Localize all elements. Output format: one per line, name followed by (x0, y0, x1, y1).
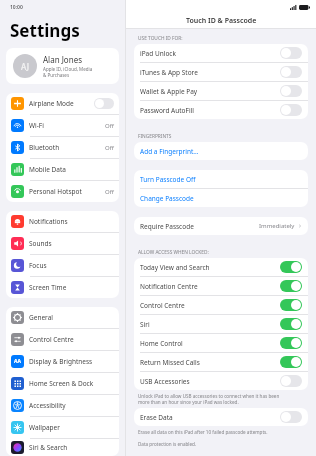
staticText: Wi-Fi (29, 121, 105, 130)
staticText: FINGERPRINTS (138, 133, 172, 140)
button[interactable]: Wallpaper (6, 417, 119, 438)
staticText: Immediately (259, 222, 295, 230)
staticText: USE TOUCH ID FOR: (138, 35, 183, 42)
button[interactable]: Turn Passcode Off (134, 170, 308, 188)
staticText: iTunes & App Store (140, 68, 280, 77)
button[interactable]: Off (280, 375, 302, 387)
button[interactable]: Notifications (6, 211, 119, 232)
staticText: USB Accessories (140, 377, 280, 386)
staticText: Screen Time (29, 283, 114, 292)
staticText: 10:00 (10, 4, 23, 11)
staticText: Unlock iPad to allow USB accessories to … (138, 393, 280, 405)
staticText: Focus (29, 261, 114, 270)
staticText: Control Centre (140, 301, 280, 310)
button[interactable]: Control Centre (134, 296, 308, 314)
button[interactable]: Return Missed Calls (134, 353, 308, 371)
staticText: Password AutoFill (140, 106, 280, 115)
staticText: Notification Centre (140, 282, 280, 291)
staticText: Erase Data (140, 413, 280, 422)
button[interactable]: Off (280, 104, 302, 116)
button[interactable]: Accessibility (6, 395, 119, 416)
staticText: Home Screen & Dock (29, 379, 114, 388)
staticText: Require Passcode (140, 222, 259, 231)
staticText: Touch ID & Passcode (186, 16, 257, 26)
button[interactable]: Require Passcode (134, 217, 308, 235)
staticText: Wallet & Apple Pay (140, 87, 280, 96)
staticText: General (29, 313, 114, 322)
button[interactable]: Airplane Mode (6, 93, 119, 114)
staticText: Wallpaper (29, 423, 114, 432)
staticText: Airplane Mode (29, 99, 94, 108)
button[interactable]: Mobile Data (6, 159, 119, 180)
button[interactable]: Add a Fingerprint... (134, 142, 308, 160)
staticText: Bluetooth (29, 143, 105, 152)
button[interactable]: Wallet & Apple Pay (134, 82, 308, 100)
staticText: Off (105, 144, 114, 152)
staticText: Off (105, 122, 114, 130)
button[interactable]: AA (6, 351, 119, 372)
button[interactable]: General (6, 307, 119, 328)
staticText: Today View and Search (140, 263, 280, 272)
button[interactable]: Home Screen & Dock (6, 373, 119, 394)
staticText: Siri (140, 320, 280, 329)
button[interactable]: Change Passcode (134, 189, 308, 207)
staticText: AA (14, 358, 21, 365)
button[interactable]: Focus (6, 255, 119, 276)
button[interactable]: Off (280, 411, 302, 423)
staticText: Siri & Search (29, 443, 114, 452)
button[interactable]: iPad Unlock (134, 44, 308, 62)
staticText: Return Missed Calls (140, 358, 280, 367)
staticText: Mobile Data (29, 165, 114, 174)
staticText: Home Control (140, 339, 280, 348)
staticText: Display & Brightness (29, 357, 114, 366)
button[interactable]: On (280, 337, 302, 349)
button[interactable]: iTunes & App Store (134, 63, 308, 81)
button[interactable]: Off (280, 47, 302, 59)
staticText: Off (105, 188, 114, 196)
staticText: Add a Fingerprint... (140, 147, 199, 156)
button[interactable]: AJ (6, 48, 119, 84)
button[interactable]: Siri (134, 315, 308, 333)
button[interactable]: Off (280, 66, 302, 78)
staticText: Change Passcode (140, 194, 194, 203)
staticText: Accessibility (29, 401, 114, 410)
staticText: Control Centre (29, 335, 114, 344)
button[interactable]: Wi-Fi (6, 115, 119, 136)
button[interactable]: Bluetooth (6, 137, 119, 158)
staticText: Sounds (29, 239, 114, 248)
staticText: & Purchases (43, 72, 70, 78)
button[interactable]: Password AutoFill (134, 101, 308, 119)
staticText: ALLOW ACCESS WHEN LOCKED: (138, 249, 209, 256)
staticText: Data protection is enabled. (138, 441, 197, 447)
button[interactable]: On (280, 280, 302, 292)
button[interactable]: Siri & Search (6, 439, 119, 456)
button[interactable]: On (280, 356, 302, 368)
staticText: Alan Jones (43, 54, 82, 65)
button[interactable]: Erase Data (134, 408, 308, 426)
staticText: Turn Passcode Off (140, 175, 196, 184)
staticText: Notifications (29, 217, 114, 226)
staticText: iPad Unlock (140, 49, 280, 58)
button[interactable]: Sounds (6, 233, 119, 254)
button[interactable]: On (280, 318, 302, 330)
staticText: Apple ID, iCloud, Media (43, 66, 93, 72)
button[interactable]: Personal Hotspot (6, 181, 119, 202)
button[interactable]: Screen Time (6, 277, 119, 298)
staticText: Erase all data on this iPad after 10 fai… (138, 429, 268, 435)
button[interactable]: Home Control (134, 334, 308, 352)
button[interactable]: Off (280, 85, 302, 97)
button[interactable]: USB Accessories (134, 372, 308, 390)
button[interactable]: On (280, 261, 302, 273)
button[interactable]: On (280, 299, 302, 311)
button[interactable]: Notification Centre (134, 277, 308, 295)
button[interactable]: Control Centre (6, 329, 119, 350)
button[interactable]: Today View and Search (134, 258, 308, 276)
staticText: Personal Hotspot (29, 187, 105, 196)
staticText: AJ (21, 61, 29, 72)
staticText: Settings (10, 19, 80, 42)
button[interactable]: Off (94, 98, 114, 109)
